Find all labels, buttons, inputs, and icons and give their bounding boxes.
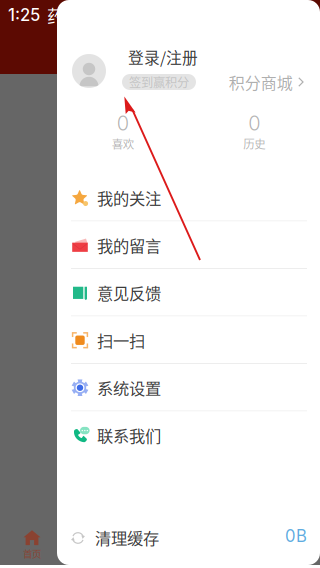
button[interactable]: 联系我们 (57, 411, 320, 459)
staticText: 意见反馈 (97, 281, 161, 305)
staticText: 喜欢 (112, 135, 134, 152)
staticText: 我的关注 (97, 186, 161, 210)
staticText: 扫一扫 (97, 328, 145, 352)
button[interactable]: 0 (188, 108, 320, 174)
button[interactable]: 签到赢积分 (122, 74, 196, 90)
staticText: 我的留言 (97, 233, 161, 257)
staticText: 联系我们 (97, 423, 161, 447)
staticText: 签到赢积分 (129, 73, 189, 91)
button[interactable]: 我的关注 (57, 174, 320, 221)
button[interactable]: 意见反馈 (57, 269, 320, 316)
button[interactable]: 清理缓存 (57, 507, 320, 565)
staticText: 历史 (243, 135, 265, 152)
staticText: 登录/注册 (128, 46, 198, 68)
button[interactable]: 0 (57, 108, 188, 174)
staticText: 系统设置 (97, 376, 161, 400)
button[interactable]: 积分商城 (229, 70, 304, 94)
staticText: 0 (248, 111, 260, 135)
staticText: 1:25 (8, 5, 40, 25)
button[interactable]: 我的留言 (57, 221, 320, 269)
staticText: 积分商城 (229, 70, 293, 94)
staticText: 清理缓存 (95, 526, 159, 549)
button[interactable]: 系统设置 (57, 364, 320, 411)
button[interactable]: 扫一扫 (57, 316, 320, 364)
staticText: 0B (285, 526, 307, 546)
staticText: 药 (47, 2, 64, 28)
staticText: 0 (117, 111, 129, 135)
staticText: 首页 (23, 547, 41, 560)
